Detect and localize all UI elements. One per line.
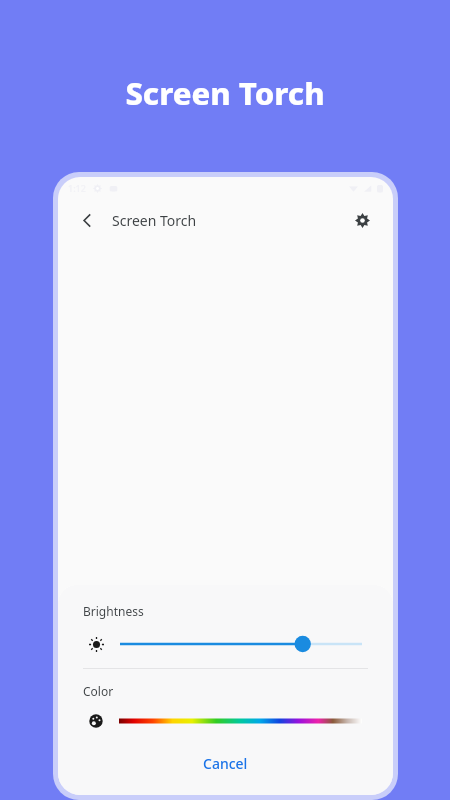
button[interactable]: Settings (347, 205, 377, 235)
staticText: Screen Torch (125, 72, 325, 114)
staticText: Cancel (203, 754, 248, 773)
staticText: Screen Torch (112, 211, 197, 230)
button[interactable]: Color slider (119, 713, 362, 729)
staticText: Color (83, 683, 114, 699)
button[interactable]: Cancel (58, 741, 393, 785)
button[interactable]: Back (72, 205, 102, 235)
button[interactable]: Brightness slider (120, 633, 362, 655)
staticText: Brightness (83, 603, 144, 619)
